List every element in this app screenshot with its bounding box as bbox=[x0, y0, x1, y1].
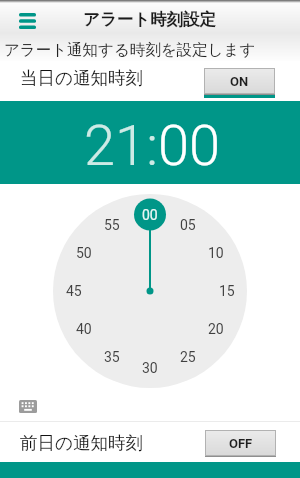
staticText: 00 bbox=[142, 207, 158, 223]
button[interactable]: 50 bbox=[69, 243, 99, 263]
staticText: 05 bbox=[180, 217, 196, 233]
staticText: 30 bbox=[142, 360, 158, 376]
staticText: 25 bbox=[180, 349, 196, 365]
button[interactable]: 10 bbox=[201, 243, 231, 263]
button[interactable]: 20 bbox=[201, 319, 231, 339]
staticText: 20 bbox=[208, 321, 224, 337]
staticText: 10 bbox=[208, 245, 224, 261]
staticText: 35 bbox=[104, 349, 120, 365]
staticText: ON bbox=[230, 74, 249, 89]
staticText: 21:00 bbox=[84, 113, 221, 179]
staticText: 15 bbox=[219, 283, 235, 299]
button[interactable]: 40 bbox=[69, 319, 99, 339]
button[interactable]: 15 bbox=[212, 281, 242, 301]
staticText: OFF bbox=[229, 436, 253, 451]
button[interactable]: ON bbox=[204, 68, 275, 98]
button[interactable]: OFF bbox=[205, 430, 276, 457]
staticText: アラート通知する時刻を設定します bbox=[4, 40, 256, 60]
staticText: 前日の通知時刻 bbox=[20, 432, 143, 454]
staticText: 当日の通知時刻 bbox=[20, 67, 143, 89]
button[interactable]: 30 bbox=[135, 358, 165, 378]
button[interactable] bbox=[14, 394, 42, 418]
button[interactable]: 55 bbox=[97, 215, 127, 235]
staticText: 45 bbox=[66, 283, 82, 299]
button[interactable]: 05 bbox=[173, 215, 203, 235]
button[interactable]: 35 bbox=[97, 347, 127, 367]
button[interactable] bbox=[8, 7, 46, 35]
staticText: アラート時刻設定 bbox=[83, 9, 217, 30]
button[interactable]: 45 bbox=[59, 281, 89, 301]
button[interactable]: 25 bbox=[173, 347, 203, 367]
staticText: 50 bbox=[76, 245, 92, 261]
staticText: 55 bbox=[104, 217, 120, 233]
staticText: 40 bbox=[76, 321, 92, 337]
button[interactable]: 00 bbox=[135, 205, 165, 225]
